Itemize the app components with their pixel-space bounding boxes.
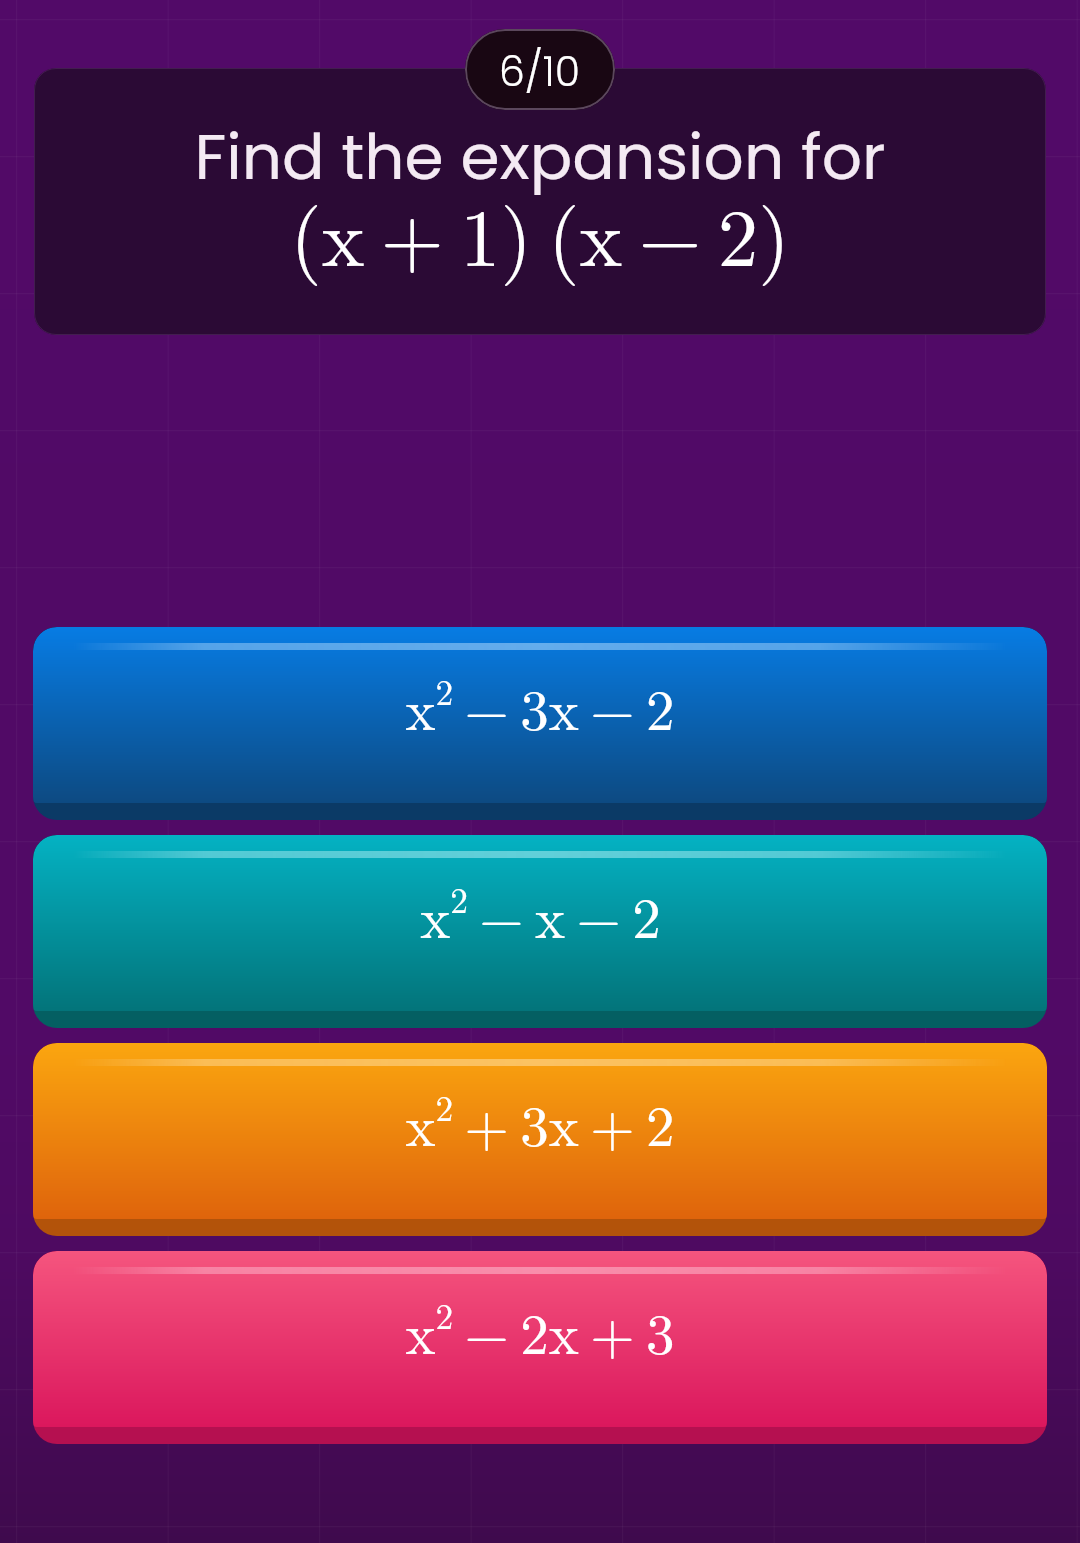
- button[interactable]: x2 − 3x − 2: [33, 627, 1047, 820]
- staticText: x2 + 3x + 2: [405, 1081, 675, 1162]
- staticText: x2 − 2x + 3: [405, 1289, 675, 1370]
- button[interactable]: Question 6 of 10: [465, 29, 615, 110]
- staticText: 6/10: [499, 43, 581, 100]
- staticText: Find the expansion for: [194, 113, 886, 201]
- staticText: x2 − x − 2: [420, 873, 661, 954]
- button[interactable]: x2 − 2x + 3: [33, 1251, 1047, 1444]
- staticText: (x + 1) (x − 2): [290, 175, 790, 290]
- button[interactable]: x2 − x − 2: [33, 835, 1047, 1028]
- staticText: x2 − 3x − 2: [405, 665, 675, 746]
- button[interactable]: x2 + 3x + 2: [33, 1043, 1047, 1236]
